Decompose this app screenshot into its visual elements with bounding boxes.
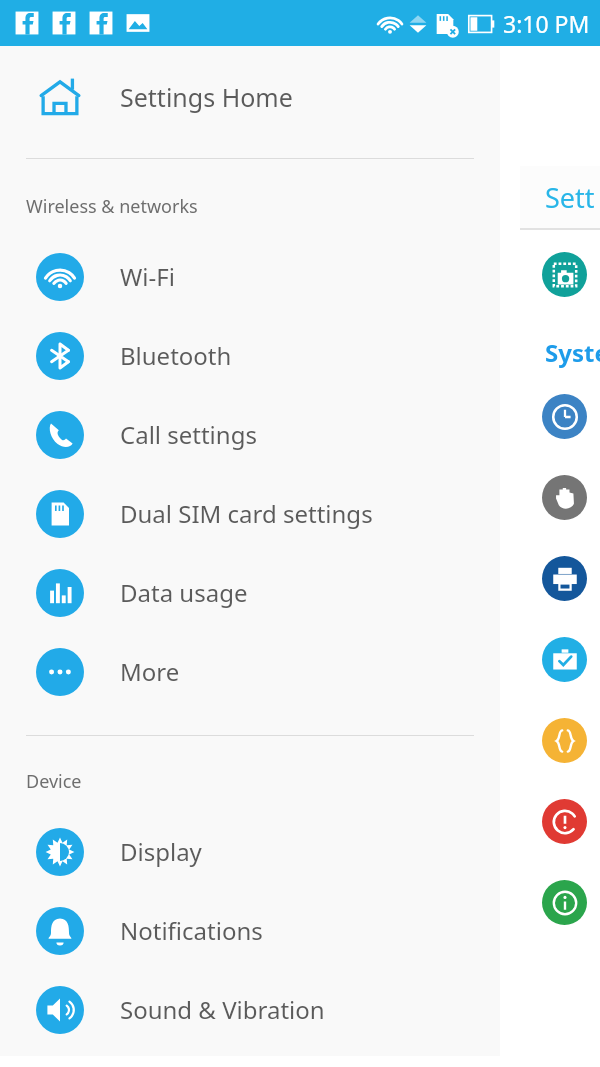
button[interactable]: Sound & Vibration [0, 970, 500, 1049]
button[interactable]: Setting [542, 799, 587, 844]
staticText: Display [120, 835, 202, 868]
staticText: 3:10 PM [503, 8, 590, 39]
button[interactable]: More [0, 632, 500, 711]
button[interactable]: Data usage [0, 553, 500, 632]
button[interactable]: Setting [542, 637, 587, 682]
staticText: Data usage [120, 576, 248, 609]
staticText: Syste [545, 336, 600, 369]
button[interactable]: Settings Home [0, 46, 500, 148]
button[interactable]: Setting [542, 252, 587, 297]
button[interactable]: Wi-Fi [0, 237, 500, 316]
button[interactable]: Notifications [0, 891, 500, 970]
staticText: Sound & Vibration [120, 993, 325, 1026]
staticText: Wireless & networks [26, 194, 198, 219]
staticText: More [120, 655, 180, 688]
button[interactable]: Setting [542, 475, 587, 520]
button[interactable]: Setting [542, 880, 587, 925]
button[interactable]: Setting [542, 556, 587, 601]
staticText: Bluetooth [120, 339, 232, 372]
staticText: Settings Home [120, 80, 293, 114]
button[interactable]: Dual SIM card settings [0, 474, 500, 553]
staticText: Call settings [120, 418, 257, 451]
staticText: Device [26, 769, 82, 794]
staticText: Notifications [120, 914, 263, 947]
button[interactable]: Bluetooth [0, 316, 500, 395]
button[interactable]: Setting [542, 718, 587, 763]
staticText: Dual SIM card settings [120, 497, 373, 530]
staticText: Sett [545, 179, 595, 216]
button[interactable]: Call settings [0, 395, 500, 474]
button[interactable]: Setting [542, 394, 587, 439]
button[interactable]: Display [0, 812, 500, 891]
staticText: Wi-Fi [120, 260, 175, 293]
